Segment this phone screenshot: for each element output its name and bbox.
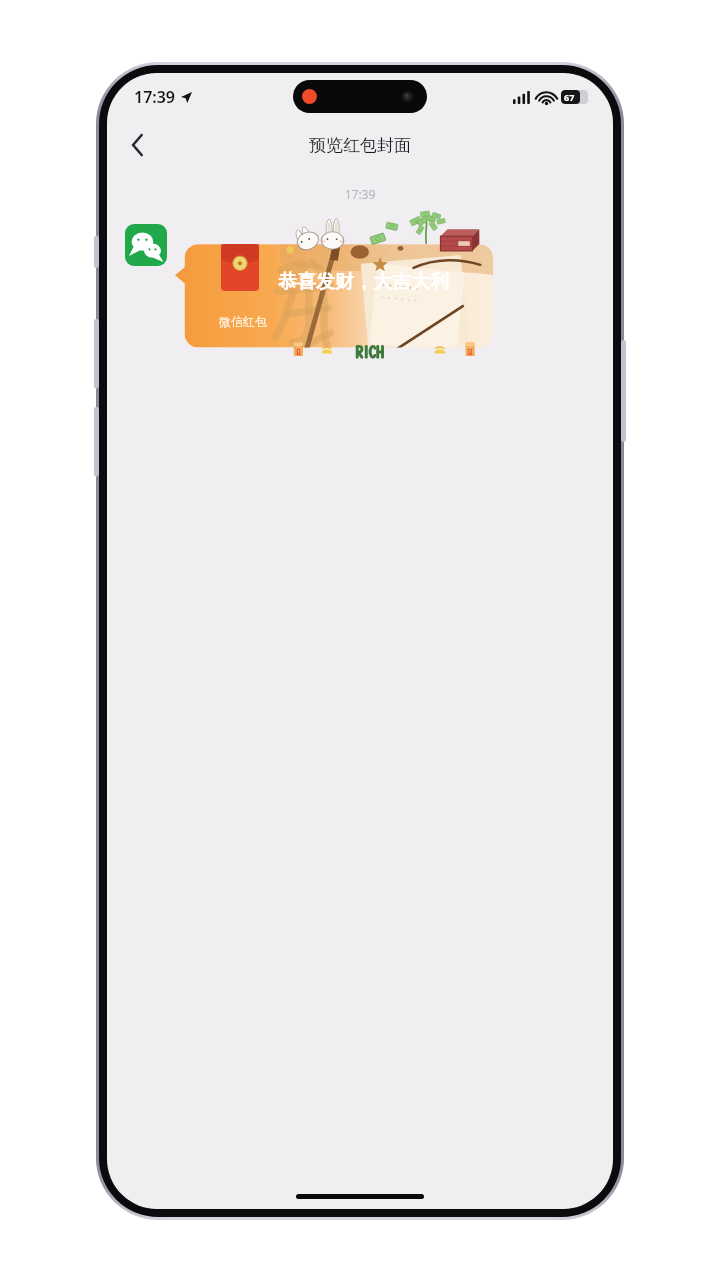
staticText: 恭喜发财，大吉大利 (278, 270, 449, 294)
staticText: 17:39 (107, 186, 613, 202)
staticText: 微信红包 (219, 314, 267, 329)
staticText: 67 (564, 91, 575, 103)
staticText: 17:39 (134, 86, 176, 108)
button[interactable]: 微信红包 (175, 213, 493, 365)
button[interactable]: WeChat avatar (125, 224, 167, 266)
staticText: 预览红包封面 (309, 135, 411, 156)
button[interactable]: Back (115, 123, 159, 167)
